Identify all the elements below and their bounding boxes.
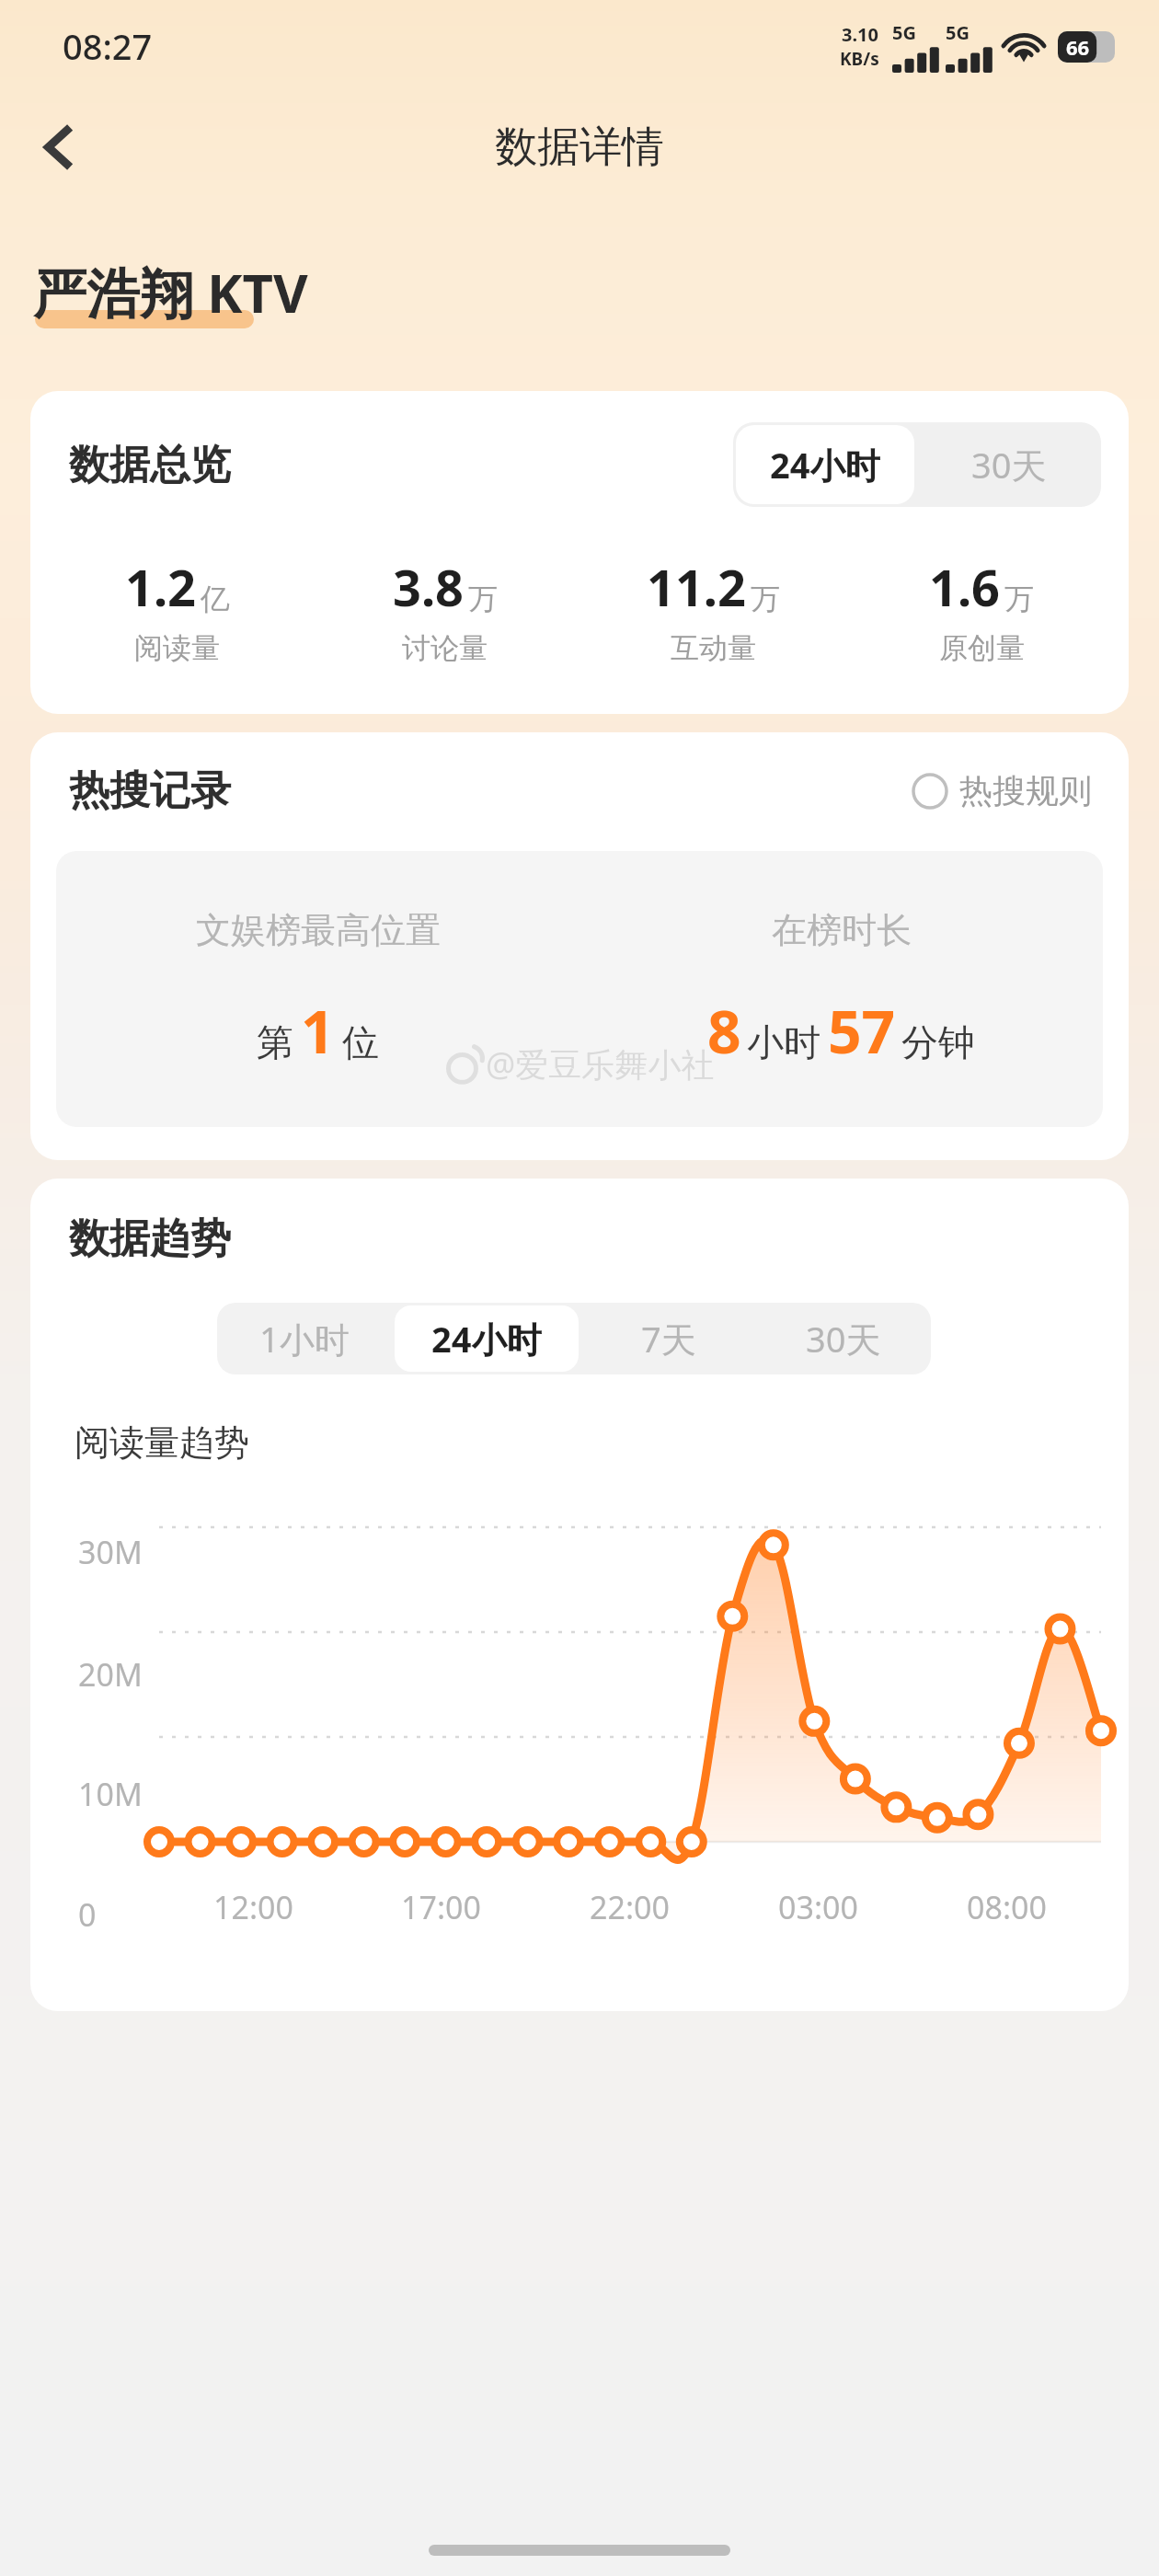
staticText: 5G [892, 20, 916, 45]
staticText: 数据趋势 [69, 1213, 231, 1264]
staticText: 24小时 [431, 1315, 542, 1363]
staticText: 12:00 [213, 1886, 293, 1928]
button[interactable]: Back [18, 107, 99, 188]
staticText: 0 [78, 1893, 189, 1936]
staticText: 11.2 [647, 553, 746, 621]
staticText: 原创量 [939, 630, 1025, 666]
staticText: 万 [468, 581, 498, 617]
staticText: 阅读量趋势 [75, 1420, 249, 1465]
staticText: 万 [1004, 581, 1034, 617]
button[interactable]: 3.8 [311, 553, 579, 666]
staticText: 亿 [201, 581, 230, 617]
button[interactable]: 1.6 [847, 553, 1116, 666]
staticText: 17:00 [401, 1886, 481, 1928]
staticText: 1.2 [125, 553, 196, 621]
button[interactable]: 30天 [756, 1303, 931, 1374]
staticText: 7天 [641, 1315, 696, 1363]
staticText: 分钟 [901, 1019, 975, 1065]
staticText: 10M [78, 1773, 189, 1815]
staticText: 30天 [806, 1315, 881, 1363]
staticText: 03:00 [778, 1886, 858, 1928]
staticText: 互动量 [671, 630, 756, 666]
button[interactable]: 热搜规则 [912, 770, 1092, 811]
staticText: 数据详情 [495, 121, 664, 174]
staticText: 小时 [747, 1019, 820, 1065]
button[interactable]: 30天 [917, 422, 1101, 507]
staticText: 位 [342, 1019, 379, 1065]
staticText: 热搜记录 [69, 765, 231, 816]
staticText: 严浩翔 KTV [33, 256, 308, 328]
button[interactable]: 1.2 [43, 553, 311, 666]
staticText: 24小时 [770, 441, 880, 489]
staticText: 讨论量 [402, 630, 488, 666]
staticText: 8 [707, 991, 741, 1071]
staticText: 热搜规则 [959, 770, 1092, 811]
staticText: 5G [946, 20, 970, 45]
button[interactable]: 1小时 [217, 1303, 392, 1374]
staticText: 在榜时长 [772, 908, 912, 952]
staticText: KB/s [840, 47, 879, 71]
staticText: 08:27 [63, 22, 153, 70]
staticText: 08:00 [967, 1886, 1047, 1928]
staticText: 数据总览 [69, 440, 231, 490]
staticText: 22:00 [590, 1886, 670, 1928]
staticText: 30天 [971, 441, 1047, 489]
staticText: 3.8 [393, 553, 464, 621]
staticText: 20M [78, 1653, 189, 1696]
staticText: 57 [828, 991, 896, 1071]
button[interactable]: 24小时 [395, 1305, 579, 1372]
staticText: 1.6 [929, 553, 1000, 621]
staticText: 3.10 [842, 22, 878, 47]
staticText: 66 [1066, 33, 1090, 61]
staticText: 第 [257, 1019, 293, 1065]
button[interactable]: 7天 [581, 1303, 756, 1374]
staticText: 万 [751, 581, 780, 617]
staticText: 1小时 [259, 1315, 350, 1363]
staticText: @爱豆乐舞小社 [486, 1041, 715, 1087]
staticText: 阅读量 [134, 630, 220, 666]
button[interactable]: 24小时 [736, 425, 914, 504]
staticText: 文娱榜最高位置 [196, 908, 441, 952]
staticText: 30M [78, 1531, 189, 1573]
button[interactable]: 11.2 [579, 553, 847, 666]
staticText: 1 [301, 991, 335, 1071]
